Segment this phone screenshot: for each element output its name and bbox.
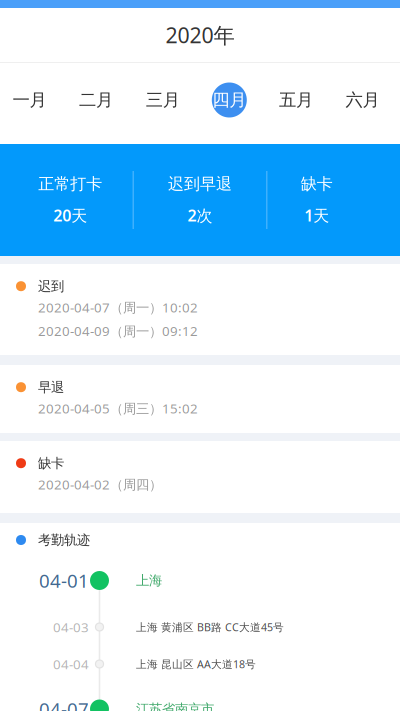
button[interactable]: 缺卡: [267, 144, 400, 256]
button[interactable]: 正常打卡: [0, 144, 133, 256]
staticText: 迟到早退: [168, 174, 232, 194]
staticText: 上海 黄浦区 BB路 CC大道45号: [136, 620, 284, 634]
staticText: 六月: [345, 89, 379, 111]
staticText: 一月: [12, 89, 46, 111]
staticText: 2020-04-07（周一）10:02: [38, 298, 198, 316]
staticText: 上海: [136, 572, 162, 589]
staticText: 考勤轨迹: [38, 532, 90, 548]
button[interactable]: 三月: [129, 63, 196, 137]
staticText: 20天: [53, 205, 87, 226]
staticText: 04-03: [53, 618, 89, 636]
button[interactable]: 一月: [0, 63, 63, 137]
staticText: 2020-04-09（周一）09:12: [38, 322, 198, 340]
staticText: 04-01: [39, 568, 89, 593]
staticText: 缺卡: [301, 174, 333, 194]
staticText: 2020-04-02（周四）: [38, 475, 162, 493]
staticText: 二月: [79, 89, 113, 111]
staticText: 上海 昆山区 AA大道18号: [136, 657, 256, 671]
staticText: 迟到: [38, 278, 64, 294]
staticText: 2020-04-05（周三）15:02: [38, 399, 198, 417]
staticText: 04-04: [53, 655, 89, 673]
staticText: 2020年: [165, 21, 234, 49]
button[interactable]: 四月: [196, 63, 263, 137]
staticText: 1天: [304, 205, 329, 226]
staticText: 正常打卡: [38, 174, 102, 194]
staticText: 五月: [279, 89, 313, 111]
staticText: 江苏省南京市: [136, 701, 214, 711]
staticText: 早退: [38, 379, 64, 395]
staticText: 缺卡: [38, 455, 64, 471]
button[interactable]: 二月: [63, 63, 129, 137]
button[interactable]: 迟到早退: [134, 144, 266, 256]
staticText: 三月: [146, 89, 180, 111]
button[interactable]: 六月: [329, 63, 396, 137]
staticText: 四月: [212, 89, 246, 111]
button[interactable]: 五月: [263, 63, 329, 137]
staticText: 04-07: [39, 697, 89, 711]
button[interactable]: 考勤轨迹: [0, 523, 400, 557]
staticText: 2次: [187, 205, 212, 226]
